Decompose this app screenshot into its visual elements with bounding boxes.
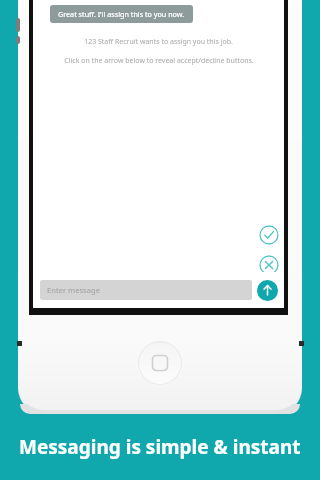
button[interactable]: Home bbox=[138, 341, 182, 385]
staticText: Enter message bbox=[47, 285, 100, 295]
staticText: Click on the arrow below to reveal accep… bbox=[64, 56, 254, 66]
button[interactable]: Send message bbox=[257, 280, 278, 301]
staticText: 123 Staff Recruit wants to assign you th… bbox=[84, 37, 233, 47]
button[interactable]: Great stuff. I'll assign this to you now… bbox=[50, 5, 193, 23]
button[interactable]: Accept job bbox=[259, 225, 279, 245]
button[interactable]: Enter message bbox=[40, 280, 252, 300]
staticText: Great stuff. I'll assign this to you now… bbox=[58, 9, 185, 19]
button[interactable]: Decline job bbox=[259, 255, 279, 275]
staticText: Messaging is simple & instant bbox=[19, 434, 301, 460]
